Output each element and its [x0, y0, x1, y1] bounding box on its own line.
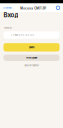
staticText: Регистрация	[26, 56, 37, 59]
staticText: Вход	[3, 11, 18, 19]
staticText: Отмена	[3, 7, 11, 9]
button[interactable]: Войти	[3, 43, 60, 51]
staticText: Войти	[29, 46, 34, 49]
button[interactable]: Отмена	[0, 3, 19, 12]
staticText: Забыли пароль?	[24, 64, 39, 67]
staticText: +7 999 000-00-00	[10, 34, 34, 36]
button[interactable]: Забыли пароль?	[3, 63, 60, 67]
button[interactable]: Регистрация	[3, 54, 60, 61]
button[interactable]: Справка	[47, 3, 63, 12]
staticText: Москва СМП ЭР	[20, 7, 46, 10]
staticText: Телефон	[3, 26, 11, 29]
